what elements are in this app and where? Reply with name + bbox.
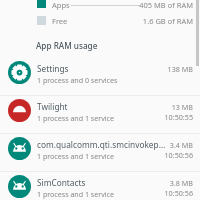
staticText: 3.8 MB: [144, 178, 193, 188]
staticText: 1 process and 1 service: [37, 151, 115, 161]
staticText: 1 process and 0 services: [37, 75, 118, 85]
staticText: 10:50:55: [144, 112, 193, 122]
staticText: Free: [52, 16, 68, 26]
staticText: 13 MB: [144, 102, 193, 112]
staticText: 1 process and 1 service: [37, 189, 115, 199]
staticText: SimContacts: [37, 177, 166, 188]
staticText: Settings: [37, 63, 166, 74]
staticText: Twilight: [37, 101, 166, 112]
staticText: 405 MB of RAM: [132, 0, 193, 10]
button[interactable]: SimContacts: [0, 171, 200, 200]
staticText: Apps: [52, 0, 70, 10]
button[interactable]: Twilight: [0, 95, 200, 133]
staticText: App RAM usage: [36, 40, 98, 51]
staticText: com.qualcomm.qti.smcinvokepkg: [37, 139, 166, 150]
staticText: 138 MB: [144, 64, 193, 74]
button[interactable]: com.qualcomm.qti.smcinvokepkg: [0, 133, 200, 171]
button[interactable]: Settings: [0, 57, 200, 95]
staticText: 10:50:56: [144, 150, 193, 160]
staticText: 10:50:56: [144, 188, 193, 198]
staticText: 3.4 MB: [144, 140, 193, 150]
staticText: 1.6 GB of RAM: [132, 16, 193, 26]
staticText: 1 process and 1 service: [37, 113, 115, 123]
